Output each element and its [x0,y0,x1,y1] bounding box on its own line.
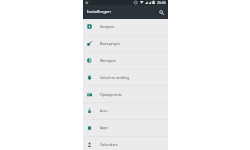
button[interactable]: Apps [83,119,168,136]
button[interactable]: Search [157,8,166,17]
staticText: Geluid en melding [100,75,130,80]
staticText: Apps [100,125,108,130]
button[interactable]: Knoppen [83,18,168,35]
button[interactable]: Bewegingen [83,35,168,52]
staticText: Opslagruimte [100,92,122,97]
button[interactable]: Geluid en melding [83,69,168,86]
staticText: Accu [100,108,108,113]
staticText: Gebruikers [100,142,118,147]
staticText: Knoppen [100,24,115,29]
button[interactable]: Weergave [83,52,168,69]
staticText: 20:46 [157,0,166,5]
button[interactable]: Opslagruimte [83,86,168,103]
staticText: Instellingen [87,8,111,14]
staticText: Bewegingen [100,41,120,46]
button[interactable]: Gebruikers [83,136,168,150]
button[interactable]: Accu [83,102,168,119]
staticText: Weergave [100,58,116,63]
